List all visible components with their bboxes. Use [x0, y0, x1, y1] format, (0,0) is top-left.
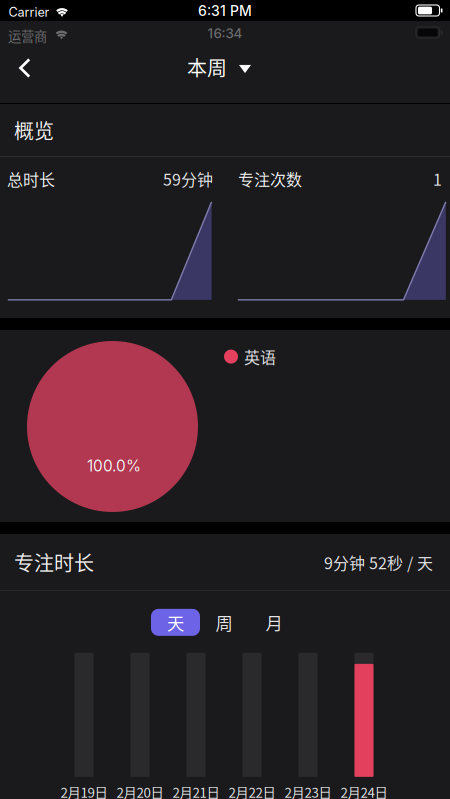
staticText: 周 [215, 610, 232, 635]
staticText: 专注时长 [14, 548, 94, 577]
staticText: 16:34 [207, 25, 242, 41]
staticText: 100.0% [87, 457, 141, 475]
staticText: Carrier [8, 4, 49, 20]
button[interactable]: 本周 [181, 45, 257, 89]
staticText: 59分钟 [163, 167, 213, 190]
staticText: 专注次数 [238, 167, 302, 190]
staticText: 6:31 PM [198, 2, 252, 19]
staticText: 本周 [187, 52, 227, 81]
button[interactable]: 月 [253, 609, 295, 636]
staticText: 9分钟 52秒 / 天 [324, 551, 433, 574]
staticText: 2月20日 [116, 782, 163, 799]
button[interactable]: 周 [203, 609, 245, 636]
staticText: 运营商 [8, 26, 47, 45]
staticText: 2月24日 [340, 782, 387, 799]
button[interactable]: 天 [151, 609, 200, 636]
staticText: 2月21日 [172, 782, 219, 799]
staticText: 概览 [14, 116, 54, 145]
button[interactable]: Back [1, 44, 49, 92]
staticText: 月 [265, 610, 282, 635]
staticText: 2月19日 [60, 782, 107, 799]
staticText: 天 [167, 610, 184, 635]
staticText: 1 [433, 167, 442, 190]
staticText: 英语 [244, 345, 276, 368]
staticText: 总时长 [7, 167, 55, 190]
staticText: 2月22日 [228, 782, 275, 799]
staticText: 2月23日 [284, 782, 331, 799]
